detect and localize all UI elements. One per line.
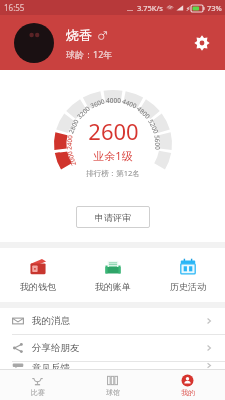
button[interactable]: 我的 bbox=[150, 370, 225, 400]
staticText: 球龄：12年 bbox=[66, 48, 113, 60]
button[interactable]: Settings bbox=[189, 30, 215, 56]
staticText: 我的账单 bbox=[95, 281, 131, 292]
staticText: 5600 bbox=[153, 135, 162, 150]
staticText: 排行榜：第12名 bbox=[86, 168, 140, 178]
button[interactable]: 申请评审 bbox=[76, 206, 150, 228]
staticText: 意见反馈 bbox=[32, 362, 70, 369]
staticText: 烧香 bbox=[66, 27, 92, 43]
staticText: 我的钱包 bbox=[20, 281, 56, 292]
button[interactable]: 我的消息 bbox=[0, 308, 225, 334]
button[interactable]: 历史活动 bbox=[150, 248, 225, 302]
staticText: 2400 bbox=[65, 135, 74, 150]
staticText: 73% bbox=[207, 3, 222, 13]
staticText: 历史活动 bbox=[170, 281, 206, 292]
staticText: ... 3.75K/s bbox=[127, 3, 163, 13]
staticText: 3600 bbox=[89, 96, 106, 110]
staticText: 2600 bbox=[88, 116, 139, 146]
button[interactable]: Avatar bbox=[14, 23, 54, 63]
staticText: 3200 bbox=[75, 104, 92, 121]
staticText: 分享给朋友 bbox=[32, 342, 80, 354]
staticText: 16:55 bbox=[4, 2, 25, 13]
staticText: 5200 bbox=[146, 118, 161, 135]
button[interactable]: 我的钱包 bbox=[0, 248, 75, 302]
button[interactable]: 我的账单 bbox=[75, 248, 150, 302]
staticText: 业余1级 bbox=[93, 148, 133, 163]
staticText: ⚡ bbox=[186, 5, 191, 12]
staticText: 我的 bbox=[181, 388, 195, 397]
button[interactable]: 比赛 bbox=[0, 370, 75, 400]
staticText: 球馆 bbox=[106, 388, 120, 397]
staticText: 2800 bbox=[66, 118, 81, 135]
staticText: 我的消息 bbox=[32, 315, 70, 327]
staticText: 比赛 bbox=[31, 388, 45, 397]
staticText: 4000 bbox=[106, 96, 121, 105]
staticText: 申请评审 bbox=[95, 212, 131, 223]
staticText: 4400 bbox=[121, 96, 138, 110]
button[interactable]: 分享给朋友 bbox=[0, 335, 225, 361]
staticText: 4800 bbox=[135, 104, 152, 121]
staticText: 2000 bbox=[65, 150, 78, 167]
button[interactable]: 意见反馈 bbox=[0, 362, 225, 369]
button[interactable]: 球馆 bbox=[75, 370, 150, 400]
